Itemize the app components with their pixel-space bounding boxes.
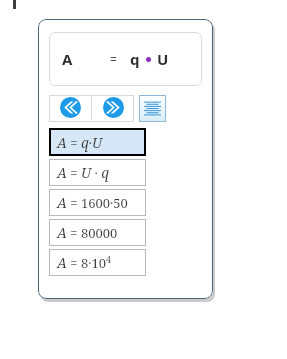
staticText: U [157,49,169,69]
staticText: A = 1600·50 [57,193,128,212]
staticText: A = q·U [57,133,103,152]
button[interactable]: Previous step [49,95,91,120]
staticText: A = 8·104 [57,253,111,272]
button[interactable]: A [49,32,202,86]
button[interactable]: A = 1600·50 [49,189,146,216]
staticText: A [62,49,73,69]
button[interactable]: Show steps list [139,95,166,122]
button[interactable]: Next step [92,95,134,120]
staticText: A = 80000 [57,223,118,242]
staticText: = [110,51,117,67]
staticText: q [130,49,140,69]
button[interactable]: A = U · q [49,159,146,186]
button[interactable]: A = 80000 [49,219,146,246]
button[interactable]: A = 8·104 [49,249,146,276]
staticText: A = U · q [57,163,109,182]
button[interactable]: A = q·U [49,128,146,156]
